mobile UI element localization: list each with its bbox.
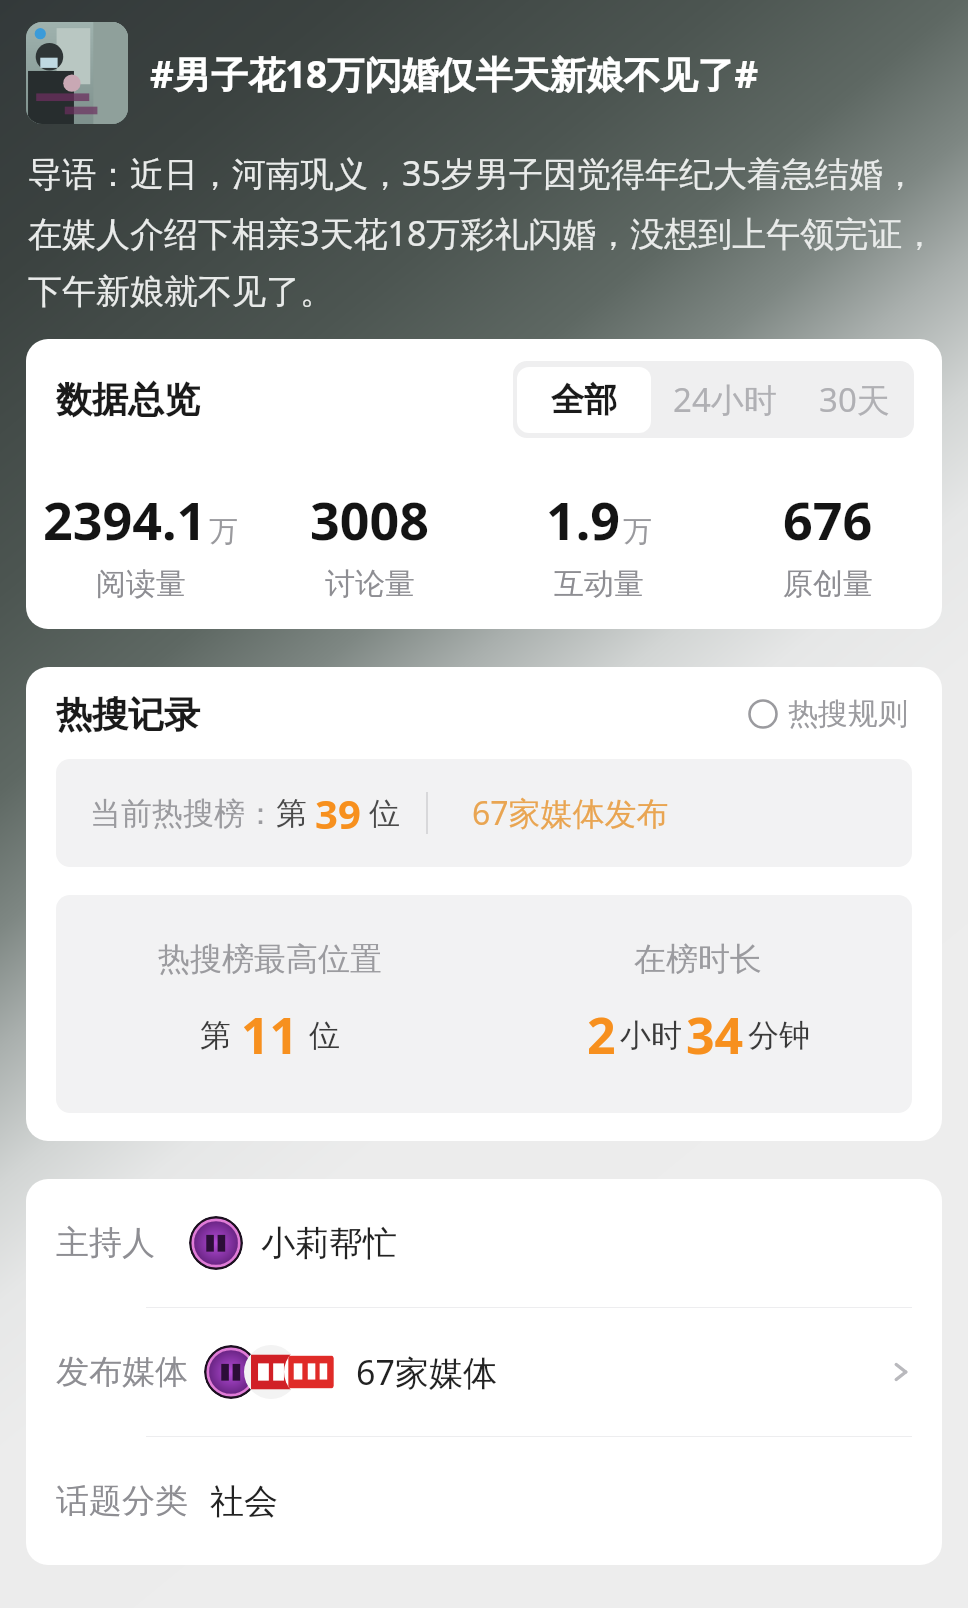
button[interactable]: 发布媒体 [26,1308,942,1436]
button[interactable]: 1.9 [484,484,713,603]
staticText: 热搜记录 [56,692,200,737]
staticText: 全部 [551,379,617,421]
staticText: 第 [276,794,307,833]
staticText: 11 [241,1001,299,1069]
staticText: 3008 [310,484,429,555]
staticText: 位 [309,1016,340,1055]
staticText: 676 [783,484,873,555]
staticText: 2 [587,1001,616,1069]
staticText: 当前热搜榜： [90,794,276,833]
button[interactable]: 2394.1 [26,484,255,603]
staticText: 万 [623,513,652,550]
staticText: 24小时 [673,377,777,422]
staticText: 67家媒体发布 [472,791,669,835]
staticText: 万 [209,513,238,550]
staticText: 讨论量 [325,565,415,603]
staticText: 发布媒体 [56,1351,188,1393]
staticText: 小时 [620,1016,682,1055]
staticText: 阅读量 [96,565,186,603]
button[interactable]: 全部 [517,367,651,433]
button[interactable]: 当前热搜榜： [56,759,912,867]
staticText: 位 [369,794,400,833]
staticText: 在榜时长 [634,939,762,979]
staticText: 话题分类 [56,1480,188,1522]
staticText: 热搜规则 [788,695,908,733]
button[interactable]: 3008 [255,484,484,603]
staticText: 原创量 [783,565,873,603]
button[interactable]: 30天 [799,365,910,434]
button[interactable]: 24小时 [651,365,799,434]
staticText: #男子花18万闪婚仅半天新娘不见了# [150,48,759,99]
staticText: 67家媒体 [356,1349,497,1395]
staticText: 导语：近日，河南巩义，35岁男子因觉得年纪大着急结婚，在媒人介绍下相亲3天花18… [28,150,942,313]
button[interactable]: 主持人 [26,1179,942,1307]
other: 查看发布媒体 [884,1355,918,1389]
staticText: 数据总览 [56,377,200,422]
staticText: 分钟 [748,1016,810,1055]
staticText: 2394.1 [43,484,207,555]
staticText: 39 [315,786,361,840]
staticText: 1.9 [546,484,621,555]
staticText: 互动量 [554,565,644,603]
staticText: 第 [200,1016,231,1055]
staticText: 社会 [210,1480,278,1523]
button[interactable]: 676 [713,484,942,603]
staticText: 30天 [819,377,890,422]
button[interactable]: 话题分类 [26,1437,942,1565]
staticText: 热搜榜最高位置 [158,939,382,979]
staticText: 34 [686,1001,744,1069]
staticText: 小莉帮忙 [261,1222,397,1265]
button[interactable]: 热搜规则 [744,691,912,737]
staticText: 主持人 [56,1222,155,1264]
